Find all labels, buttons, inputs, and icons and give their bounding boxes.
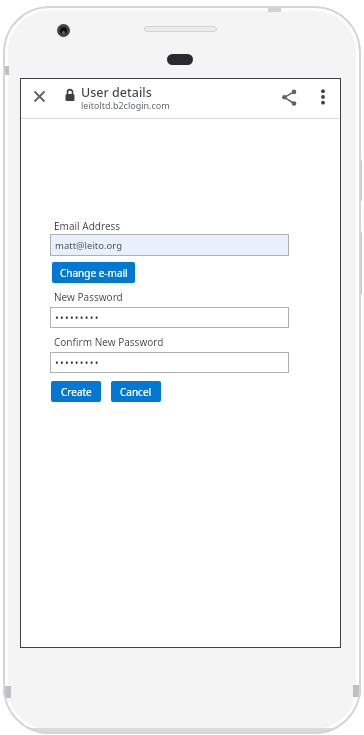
button[interactable]: ••••••••• [50, 352, 289, 373]
staticText: ••••••••• [55, 311, 100, 325]
staticText: Create [61, 385, 92, 399]
button[interactable]: Cancel [111, 381, 161, 402]
button[interactable]: Create [51, 381, 101, 402]
button[interactable] [30, 87, 49, 106]
staticText: Cancel [120, 385, 152, 399]
staticText: leitoltd.b2clogin.com [81, 99, 170, 111]
staticText: New Password [54, 290, 123, 304]
staticText: matt@leito.org [55, 239, 123, 252]
staticText: Confirm New Password [54, 335, 164, 349]
button[interactable]: matt@leito.org [50, 234, 289, 256]
staticText: Change e-mail [60, 266, 128, 280]
button[interactable]: Change e-mail [52, 262, 135, 283]
button[interactable]: ••••••••• [50, 307, 289, 328]
staticText: ••••••••• [55, 356, 100, 370]
staticText: User details [81, 84, 152, 101]
button[interactable] [279, 87, 299, 107]
button[interactable] [315, 87, 331, 107]
staticText: Email Address [54, 219, 121, 233]
